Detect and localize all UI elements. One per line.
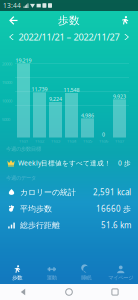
- button[interactable]: Home: [46, 284, 92, 300]
- staticText: 歩数: [12, 274, 22, 281]
- staticText: 11/26: [99, 138, 108, 144]
- staticText: 2022/11/21 – 2022/11/27: [18, 31, 119, 43]
- button[interactable]: 平均歩数: [0, 200, 138, 217]
- button[interactable]: Back: [0, 284, 46, 300]
- staticText: 今週の歩数目標: [6, 146, 41, 152]
- staticText: 11/22: [35, 138, 44, 144]
- button[interactable]: カロリーの統計: [0, 184, 138, 200]
- staticText: 10000: [2, 98, 12, 104]
- button[interactable]: 睡眠: [69, 262, 103, 284]
- staticText: 15000: [2, 80, 12, 85]
- button[interactable]: Next week: [119, 30, 132, 44]
- staticText: カロリーの統計: [20, 187, 76, 197]
- staticText: 9,224: [49, 95, 62, 102]
- staticText: 11/21: [19, 138, 28, 144]
- staticText: 5000: [2, 117, 10, 122]
- button[interactable]: Back: [1, 11, 25, 30]
- button[interactable]: 運動: [34, 262, 69, 284]
- staticText: 2,591 kcal: [93, 187, 131, 197]
- staticText: 11/27: [115, 138, 124, 144]
- button[interactable]: Previous week: [5, 30, 18, 44]
- staticText: Weekly目標値をすべて達成！: [18, 159, 111, 167]
- staticText: 総歩行距離: [20, 220, 60, 230]
- staticText: 歩数: [58, 14, 80, 27]
- staticText: 平均歩数: [20, 204, 52, 214]
- staticText: 11,739: [31, 86, 47, 93]
- staticText: 51.6 km: [101, 220, 131, 230]
- staticText: 睡眠: [81, 274, 91, 281]
- staticText: 4,986: [81, 112, 94, 119]
- staticText: 今週のデータ: [6, 175, 36, 181]
- staticText: 20000: [2, 61, 12, 67]
- staticText: 0: [102, 131, 105, 138]
- staticText: 0 歩: [118, 159, 131, 167]
- staticText: マイページ: [108, 274, 133, 281]
- button[interactable]: 総歩行距離: [0, 217, 138, 233]
- staticText: 11/23: [51, 138, 60, 144]
- staticText: 13:44: [3, 1, 21, 10]
- staticText: 11/24: [67, 138, 76, 144]
- staticText: 16660 歩: [96, 203, 131, 214]
- staticText: 運動: [47, 274, 57, 281]
- staticText: 19,219: [15, 57, 31, 64]
- button[interactable]: Step settings: [113, 11, 137, 30]
- button[interactable]: マイページ: [103, 262, 138, 284]
- button[interactable]: Recent apps: [92, 284, 138, 300]
- staticText: 11,548: [63, 86, 79, 94]
- staticText: 9,923: [113, 93, 126, 100]
- staticText: 11/25: [83, 138, 92, 144]
- button[interactable]: 歩数: [0, 262, 34, 284]
